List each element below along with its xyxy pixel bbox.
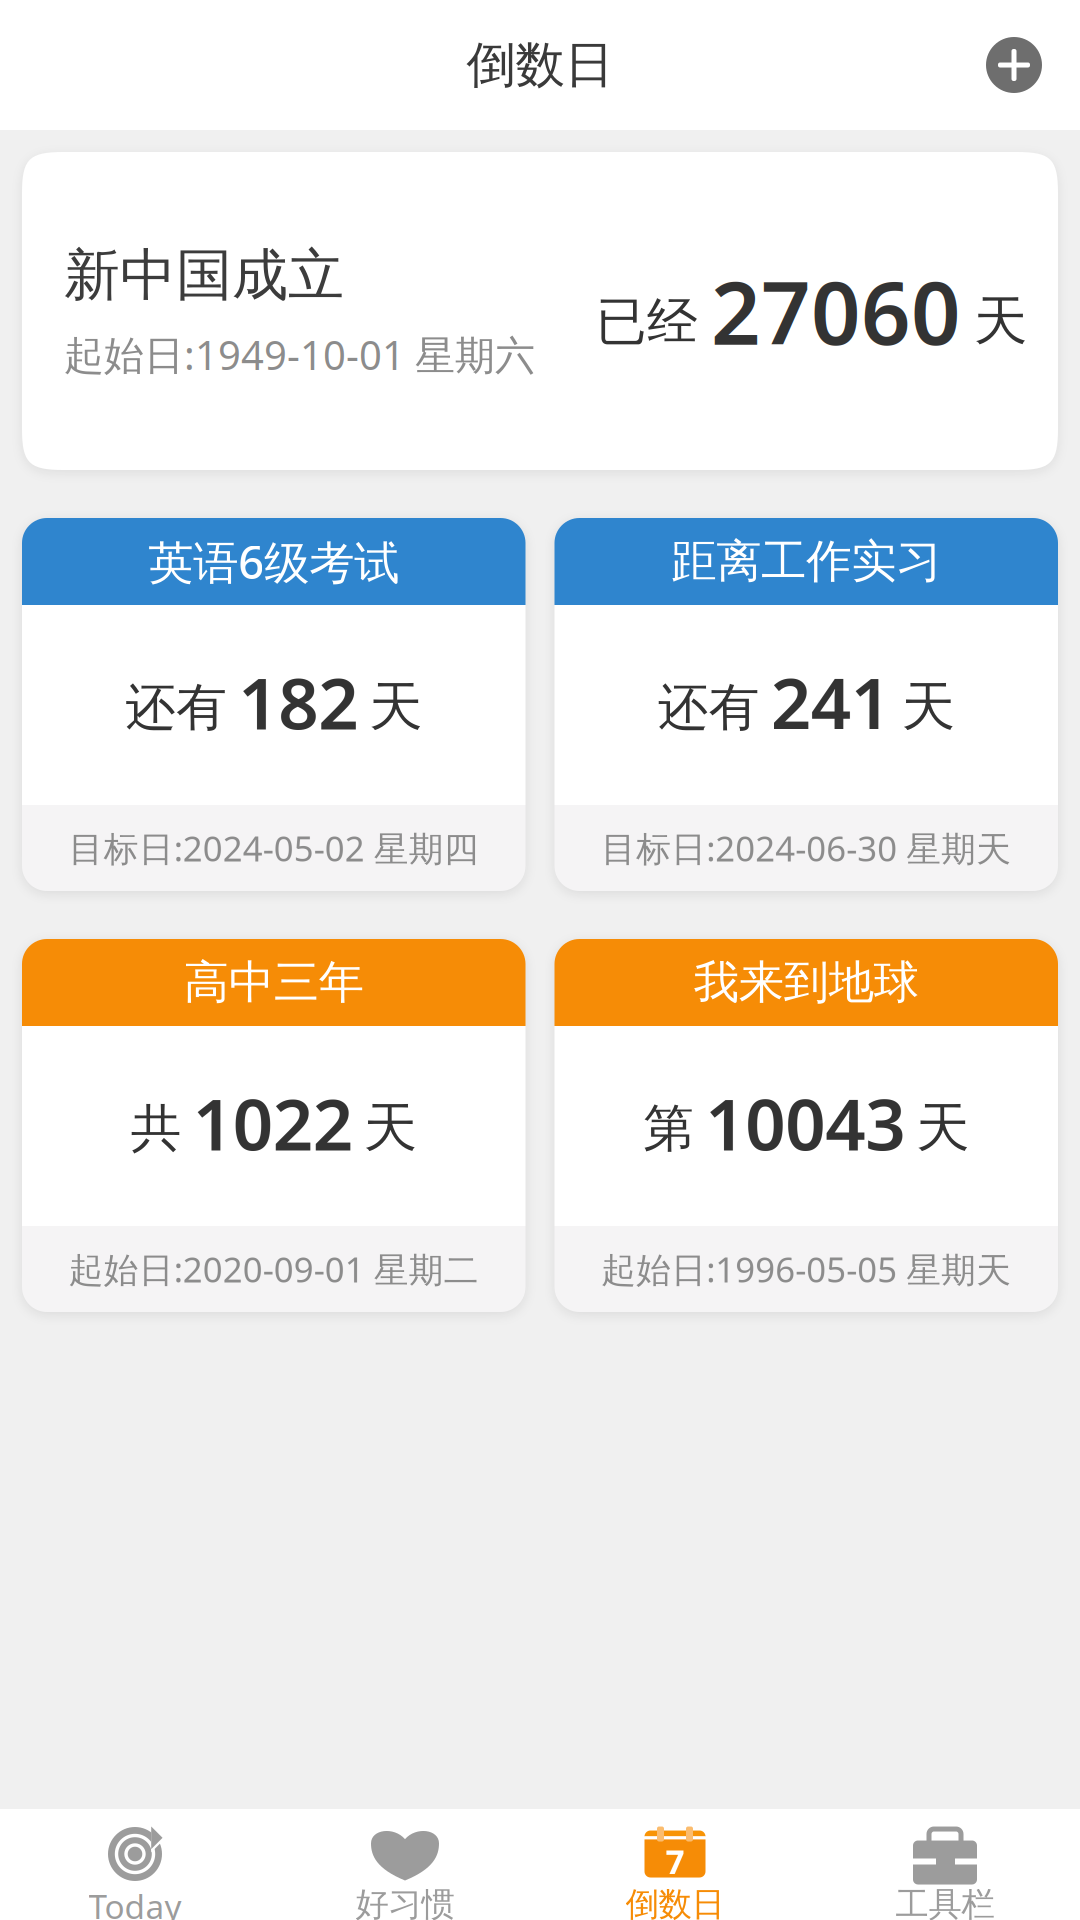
staticText: 还有: [125, 676, 227, 739]
button[interactable]: 好习惯: [270, 1809, 540, 1920]
staticText: 共: [131, 1097, 182, 1160]
staticText: 天: [902, 674, 955, 739]
staticText: 7: [665, 1839, 684, 1884]
button[interactable]: 英语6级考试: [22, 518, 525, 891]
button[interactable]: Today: [0, 1809, 270, 1920]
button[interactable]: 距离工作实习: [554, 518, 1058, 891]
staticText: 目标日:2024-06-30 星期天: [601, 825, 1011, 871]
staticText: 新中国成立: [64, 241, 344, 310]
button[interactable]: 高中三年: [22, 939, 525, 1312]
staticText: 起始日:1996-05-05 星期天: [601, 1246, 1011, 1292]
staticText: 倒数日: [466, 35, 613, 95]
staticText: 天: [364, 1095, 417, 1160]
button[interactable]: Add countdown: [964, 15, 1064, 115]
staticText: 目标日:2024-05-02 星期四: [69, 825, 479, 871]
button[interactable]: 新中国成立: [22, 152, 1058, 470]
staticText: 好习惯: [355, 1884, 454, 1920]
staticText: 天: [369, 674, 422, 739]
staticText: 241: [771, 655, 891, 749]
staticText: 距离工作实习: [671, 534, 941, 589]
staticText: 我来到地球: [694, 955, 919, 1010]
button[interactable]: 7: [540, 1809, 810, 1920]
staticText: 1022: [193, 1076, 353, 1170]
staticText: Today: [88, 1884, 181, 1920]
button[interactable]: 工具栏: [810, 1809, 1080, 1920]
staticText: 182: [238, 655, 358, 749]
staticText: 第: [643, 1097, 694, 1160]
staticText: 倒数日: [625, 1884, 724, 1920]
staticText: 天: [916, 1095, 969, 1160]
staticText: 10043: [705, 1076, 905, 1170]
staticText: 起始日:2020-09-01 星期二: [69, 1246, 479, 1292]
button[interactable]: 我来到地球: [554, 939, 1058, 1312]
staticText: 高中三年: [184, 955, 364, 1010]
staticText: 已经: [596, 291, 698, 353]
staticText: 天: [974, 288, 1027, 354]
staticText: 起始日:1949-10-01 星期六: [64, 328, 535, 381]
staticText: 工具栏: [895, 1884, 994, 1920]
staticText: 英语6级考试: [148, 531, 399, 592]
staticText: 还有: [658, 676, 760, 739]
staticText: 27060: [711, 253, 961, 369]
